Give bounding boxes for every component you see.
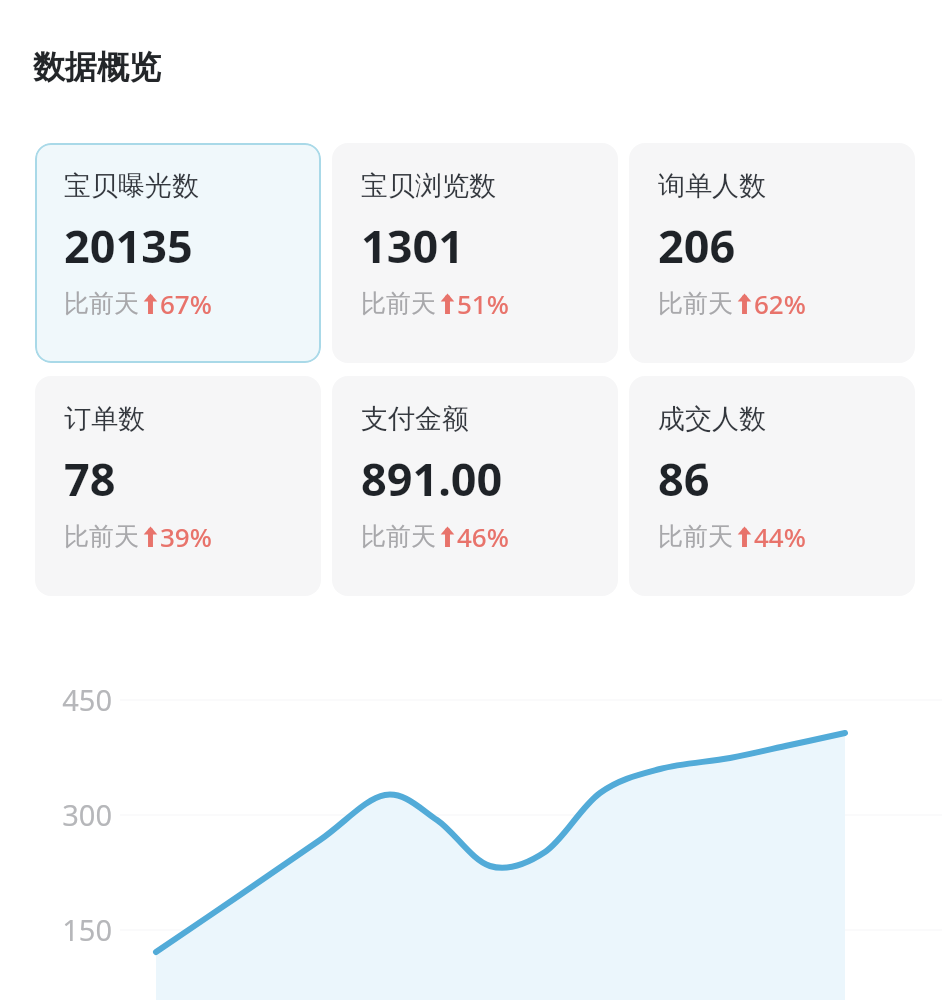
staticText: 44% [754, 519, 806, 554]
staticText: 比前天 [361, 288, 436, 319]
staticText: 比前天 [64, 288, 139, 319]
other: 上升 [142, 525, 159, 549]
other: 上升 [142, 292, 159, 316]
staticText: 86 [658, 448, 710, 509]
staticText: 67% [160, 286, 212, 321]
staticText: 1301 [361, 215, 464, 276]
staticText: 39% [160, 519, 212, 554]
staticText: 300 [22, 795, 112, 834]
staticText: 询单人数 [658, 169, 766, 203]
other: 上升 [439, 525, 456, 549]
staticText: 891.00 [361, 448, 503, 509]
staticText: 450 [22, 680, 112, 719]
staticText: 150 [22, 910, 112, 949]
staticText: 宝贝曝光数 [64, 169, 199, 203]
other: 上升 [736, 292, 753, 316]
button[interactable]: 成交人数 [629, 376, 915, 596]
staticText: 62% [754, 286, 806, 321]
other: 上升 [439, 292, 456, 316]
button[interactable]: 宝贝曝光数 [35, 143, 321, 363]
staticText: 206 [658, 215, 736, 276]
staticText: 比前天 [361, 521, 436, 552]
staticText: 比前天 [658, 521, 733, 552]
other: 上升 [736, 525, 753, 549]
staticText: 20135 [64, 215, 193, 276]
staticText: 支付金额 [361, 402, 469, 436]
staticText: 数据概览 [33, 47, 161, 87]
staticText: 78 [64, 448, 116, 509]
staticText: 成交人数 [658, 402, 766, 436]
staticText: 比前天 [658, 288, 733, 319]
staticText: 宝贝浏览数 [361, 169, 496, 203]
staticText: 订单数 [64, 402, 145, 436]
button[interactable]: 询单人数 [629, 143, 915, 363]
staticText: 比前天 [64, 521, 139, 552]
button[interactable]: 宝贝浏览数 [332, 143, 618, 363]
staticText: 46% [457, 519, 509, 554]
button[interactable]: 支付金额 [332, 376, 618, 596]
button[interactable]: 订单数 [35, 376, 321, 596]
staticText: 51% [457, 286, 509, 321]
